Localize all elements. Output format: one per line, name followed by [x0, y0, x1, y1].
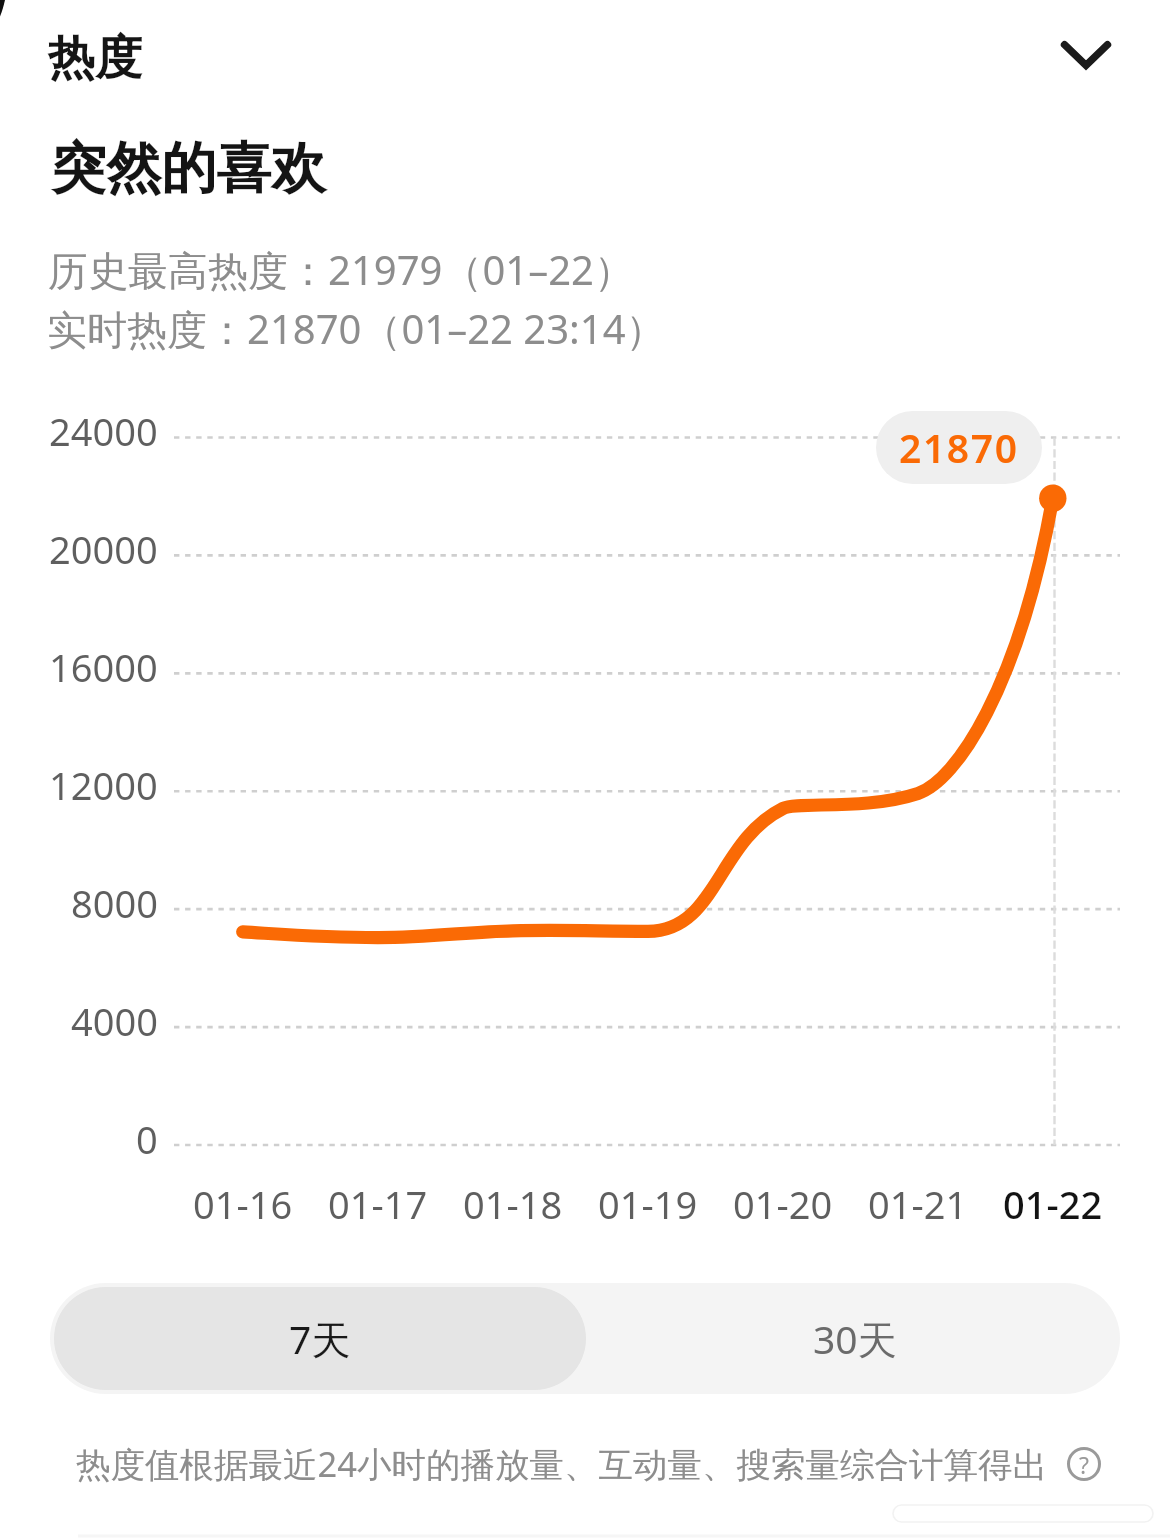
staticText: 7天 — [289, 1312, 351, 1365]
staticText: 热度值根据最近24小时的播放量、互动量、搜索量综合计算得出 — [76, 1440, 1047, 1487]
button[interactable]: 30天 — [590, 1283, 1120, 1394]
button[interactable]: Collapse — [1038, 7, 1134, 103]
staticText: 01-17 — [328, 1178, 428, 1230]
staticText: 实时热度：21870（01–22 23:14） — [47, 301, 666, 356]
staticText: 0 — [136, 1113, 158, 1165]
staticText: 12000 — [49, 759, 158, 811]
staticText: 01-22 — [1003, 1178, 1103, 1230]
staticText: 01-19 — [598, 1178, 698, 1230]
staticText: 21870 — [899, 421, 1019, 474]
staticText: 突然的喜欢 — [51, 134, 326, 203]
staticText: 热度 — [48, 29, 142, 88]
staticText: 4000 — [71, 995, 158, 1047]
staticText: 8000 — [71, 877, 158, 929]
staticText: 01-18 — [463, 1178, 563, 1230]
staticText: 历史最高热度：21979（01–22） — [48, 242, 634, 297]
staticText: 01-20 — [733, 1178, 833, 1230]
staticText: 24000 — [49, 405, 158, 457]
staticText: ? — [1079, 1449, 1089, 1480]
staticText: 30天 — [813, 1312, 897, 1365]
button[interactable]: 21870 — [876, 411, 1042, 484]
staticText: 01-16 — [193, 1178, 293, 1230]
staticText: 16000 — [49, 641, 158, 693]
button[interactable]: 7天 — [54, 1287, 586, 1390]
staticText: 01-21 — [868, 1178, 968, 1230]
staticText: 20000 — [49, 523, 158, 575]
button[interactable]: Help — [1067, 1447, 1101, 1481]
